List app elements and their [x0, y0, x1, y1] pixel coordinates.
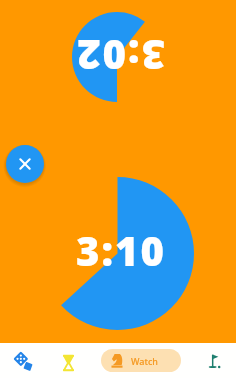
staticText: 3:02 [75, 29, 165, 83]
button[interactable]: Golf [194, 345, 234, 378]
staticText: Watch [131, 355, 158, 367]
staticText: 3:10 [76, 223, 166, 277]
button[interactable]: Watch [101, 349, 181, 372]
button[interactable]: Timer [48, 346, 88, 378]
button[interactable]: Cancel timer [6, 145, 44, 183]
button[interactable]: Dice [3, 344, 43, 377]
